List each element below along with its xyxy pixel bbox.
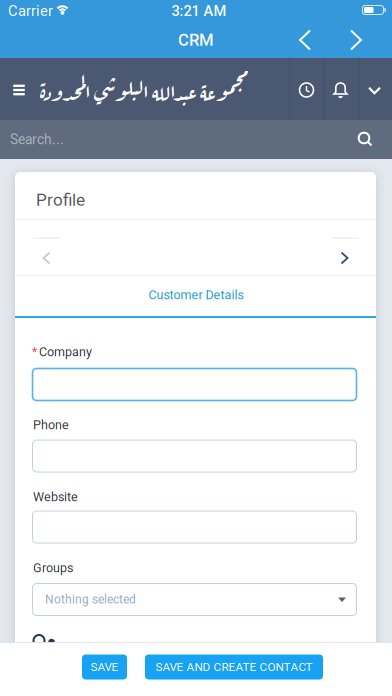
- button[interactable]: Customer Details: [106, 280, 286, 310]
- button[interactable]: Groups, nothing selected: [32, 583, 357, 616]
- button[interactable]: Notifications: [333, 81, 348, 98]
- staticText: 3:21 AM: [171, 2, 226, 20]
- button[interactable]: Menu: [13, 85, 25, 95]
- button[interactable]: More: [369, 88, 380, 93]
- staticText: Groups: [33, 561, 73, 575]
- staticText: *: [32, 345, 37, 359]
- button[interactable]: Search: [0, 120, 392, 159]
- staticText: Phone: [33, 418, 69, 432]
- button[interactable]: Next: [341, 21, 371, 59]
- button[interactable]: History: [298, 82, 314, 98]
- staticText: Search...: [10, 131, 64, 148]
- staticText: Company: [39, 345, 92, 359]
- staticText: Website: [33, 490, 78, 504]
- staticText: Customer Details: [148, 288, 243, 302]
- staticText: مجموعة عبدالله البلوشي المحدودة: [39, 73, 248, 107]
- staticText: Profile: [36, 190, 85, 210]
- staticText: Carrier: [8, 2, 53, 20]
- button[interactable]: SAVE: [82, 654, 127, 679]
- button[interactable]: Next tab: [334, 243, 354, 273]
- staticText: SAVE: [90, 660, 118, 674]
- button[interactable]: Previous tab: [36, 243, 56, 273]
- staticText: SAVE AND CREATE CONTACT: [155, 660, 312, 674]
- staticText: Nothing selected: [45, 592, 136, 607]
- button[interactable]: Previous: [290, 21, 320, 59]
- staticText: CRM: [178, 30, 214, 50]
- button[interactable]: SAVE AND CREATE CONTACT: [145, 654, 323, 679]
